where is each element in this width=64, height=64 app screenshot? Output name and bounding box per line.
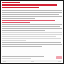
button[interactable]: Primary action <box>56 56 62 59</box>
button[interactable] <box>2 60 62 62</box>
button[interactable] <box>2 2 62 8</box>
button[interactable] <box>2 20 62 23</box>
